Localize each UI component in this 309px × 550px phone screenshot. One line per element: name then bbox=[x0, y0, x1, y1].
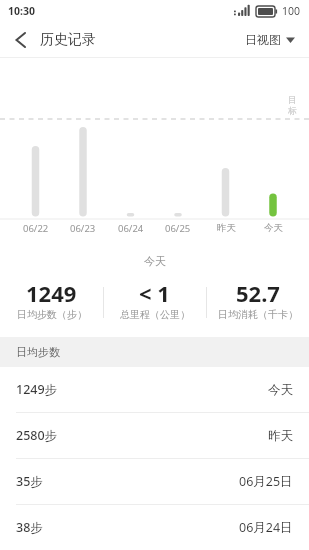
staticText: 昨天 bbox=[268, 428, 293, 444]
staticText: 1249步 bbox=[16, 381, 58, 398]
staticText: 标 bbox=[288, 105, 297, 116]
staticText: 100 bbox=[282, 4, 301, 18]
staticText: 今天 bbox=[264, 222, 283, 234]
staticText: 06月25日 bbox=[239, 473, 293, 490]
staticText: 昨天 bbox=[217, 222, 236, 234]
staticText: 1249 bbox=[26, 278, 77, 308]
staticText: 10:30 bbox=[8, 4, 35, 18]
staticText: 今天 bbox=[268, 382, 293, 398]
staticText: 2580步 bbox=[16, 427, 58, 444]
staticText: 总里程（公里） bbox=[120, 308, 190, 321]
button[interactable]: 35步 bbox=[0, 459, 309, 505]
staticText: 日均步数 bbox=[16, 345, 60, 359]
button[interactable]: 38步 bbox=[0, 505, 309, 550]
staticText: 日视图 bbox=[245, 32, 281, 47]
staticText: 日均步数（步） bbox=[17, 308, 87, 321]
staticText: 今天 bbox=[144, 254, 166, 268]
staticText: 06月24日 bbox=[239, 519, 293, 536]
staticText: 06/25 bbox=[165, 222, 191, 235]
button[interactable] bbox=[0, 22, 40, 57]
staticText: 06/23 bbox=[70, 222, 96, 235]
staticText: < 1 bbox=[139, 278, 170, 308]
staticText: 35步 bbox=[16, 473, 43, 490]
staticText: 06/22 bbox=[23, 222, 49, 235]
button[interactable]: 2580步 bbox=[0, 413, 309, 459]
staticText: 目 bbox=[288, 94, 297, 105]
staticText: 历史记录 bbox=[40, 31, 96, 49]
staticText: 38步 bbox=[16, 519, 43, 536]
staticText: 日均消耗（千卡） bbox=[218, 308, 298, 321]
staticText: 52.7 bbox=[236, 278, 280, 308]
staticText: 06/24 bbox=[118, 222, 144, 235]
button[interactable]: 1249步 bbox=[0, 367, 309, 413]
button[interactable]: 日视图 bbox=[245, 22, 309, 57]
